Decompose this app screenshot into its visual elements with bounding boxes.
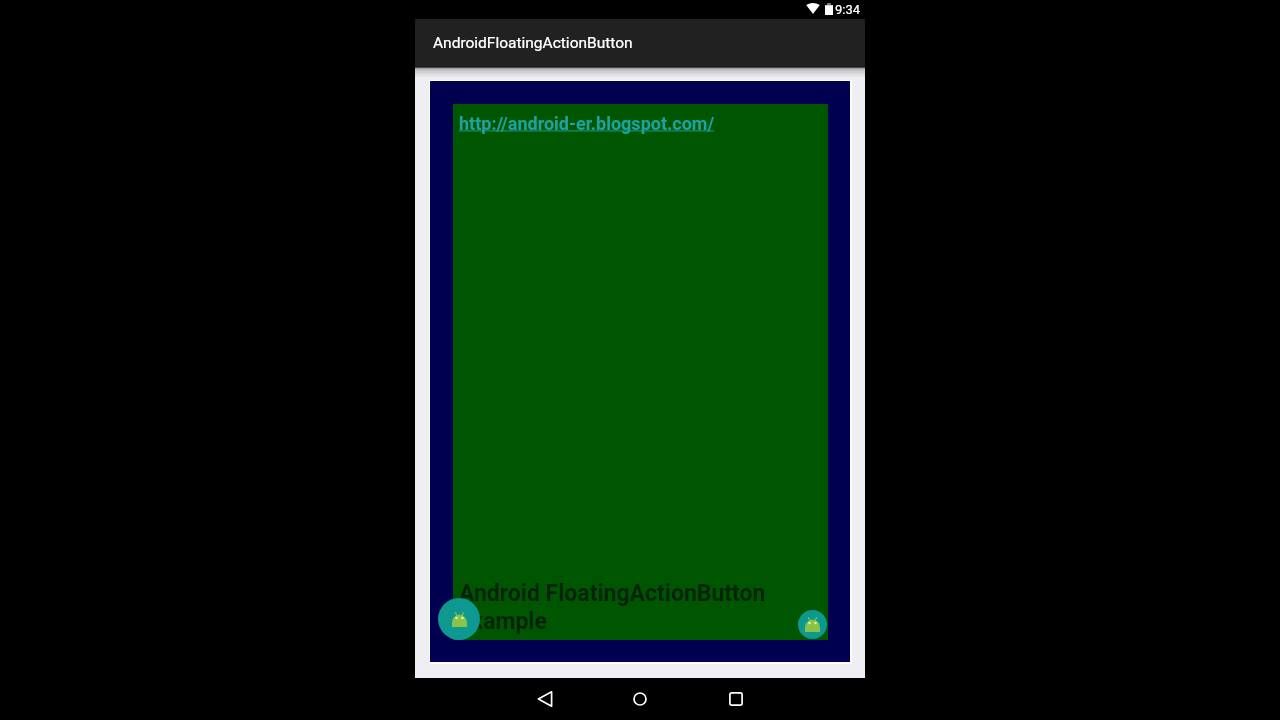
- staticText: AndroidFloatingActionButton: [433, 34, 633, 52]
- button[interactable]: Android action: [798, 610, 827, 639]
- button[interactable]: http://android-er.blogspot.com/: [459, 113, 715, 134]
- button[interactable]: Back: [523, 678, 567, 720]
- button[interactable]: Recents: [714, 678, 758, 720]
- button[interactable]: Home: [618, 678, 662, 720]
- staticText: Android FloatingActionButton example: [459, 580, 784, 634]
- button[interactable]: Android action: [438, 598, 480, 640]
- staticText: 9:34: [835, 2, 861, 17]
